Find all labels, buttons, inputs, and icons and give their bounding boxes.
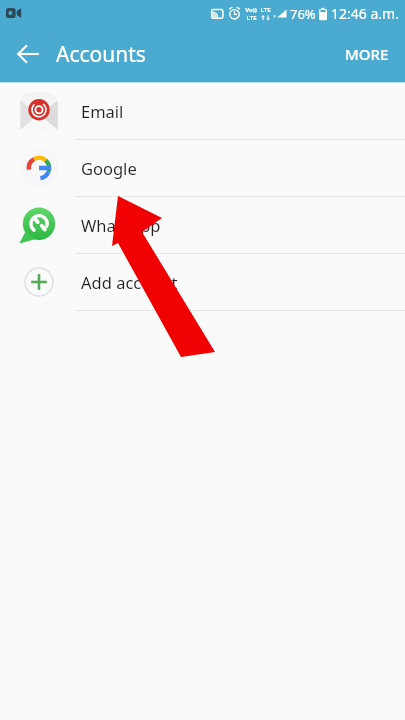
button[interactable]: Email [0,83,405,139]
staticText: Google [81,157,137,179]
button[interactable]: WhatsApp [0,197,405,253]
staticText: LTE [246,14,257,22]
button[interactable]: Add account [0,254,405,310]
button[interactable]: MORE [329,30,405,78]
staticText: 76% [290,5,316,23]
staticText: Email [81,100,124,122]
staticText: WhatsApp [81,214,161,236]
staticText: Vo)) [245,6,257,14]
button[interactable]: Google [0,140,405,196]
button[interactable]: Navigate up [8,34,48,74]
staticText: ↑↓ [260,14,271,21]
staticText: MORE [345,44,389,64]
staticText: Add account [81,271,178,293]
staticText: 12:46 a.m. [331,4,399,23]
staticText: LTE [260,6,271,14]
staticText: Accounts [56,40,146,69]
